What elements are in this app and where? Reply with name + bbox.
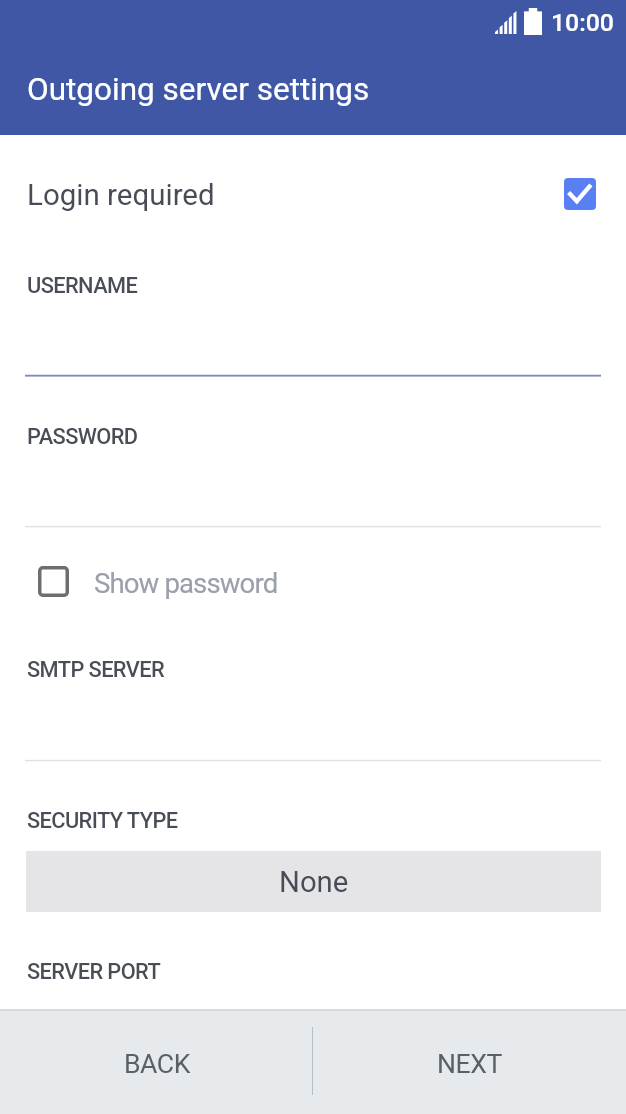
staticText: 10:00 bbox=[551, 8, 614, 37]
staticText: Outgoing server settings bbox=[27, 71, 370, 108]
staticText: Show password bbox=[94, 567, 278, 599]
staticText: SECURITY TYPE bbox=[27, 808, 178, 834]
staticText: None bbox=[279, 865, 349, 899]
staticText: SERVER PORT bbox=[27, 959, 161, 985]
button[interactable]: Show password, unchecked bbox=[0, 546, 626, 616]
button[interactable]: SMTP server input field bbox=[25, 646, 601, 763]
button[interactable]: NEXT bbox=[313, 1010, 626, 1114]
button[interactable]: Login required bbox=[0, 135, 626, 252]
staticText: USERNAME bbox=[27, 273, 138, 299]
button[interactable]: BACK bbox=[0, 1010, 312, 1114]
other: Show password, unchecked bbox=[38, 566, 69, 597]
button[interactable]: Username input field bbox=[25, 262, 601, 378]
staticText: NEXT bbox=[437, 1048, 502, 1079]
staticText: PASSWORD bbox=[27, 424, 138, 450]
staticText: Login required bbox=[27, 178, 215, 213]
other: Login required, checked bbox=[564, 178, 596, 210]
button[interactable]: None bbox=[26, 851, 601, 912]
button[interactable]: Server port input field bbox=[25, 948, 600, 1009]
staticText: SMTP SERVER bbox=[27, 657, 165, 683]
staticText: BACK bbox=[124, 1048, 190, 1079]
button[interactable]: Password input field bbox=[25, 413, 601, 529]
